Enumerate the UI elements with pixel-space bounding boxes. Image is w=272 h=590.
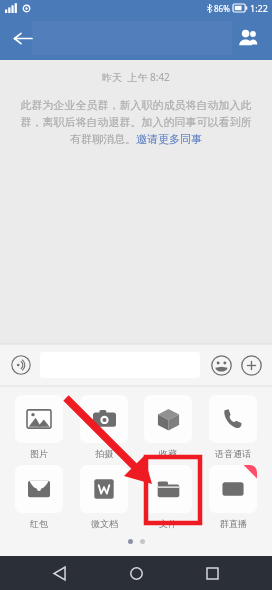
button[interactable]: 拍摄 xyxy=(75,395,133,459)
button[interactable]: 红包 xyxy=(10,465,68,529)
staticText: 此群为企业全员群，新入职的成员将自动加入此群，离职后将自动退群。加入的同事可以看… xyxy=(18,98,254,146)
staticText: 红包 xyxy=(30,518,48,529)
staticText: 1:22 xyxy=(250,2,268,14)
staticText: 收藏 xyxy=(159,448,177,459)
button[interactable]: Home xyxy=(120,557,152,589)
button[interactable]: Recent apps xyxy=(196,557,228,589)
staticText: 群直播 xyxy=(220,518,247,529)
button[interactable]: Back xyxy=(4,20,40,56)
button[interactable]: 图片 xyxy=(10,395,68,459)
button[interactable]: Back xyxy=(44,557,76,589)
button[interactable]: 群直播 xyxy=(204,465,262,529)
staticText: 微文档 xyxy=(91,518,118,529)
button[interactable]: 文件 xyxy=(139,465,197,529)
button[interactable]: Group members xyxy=(230,20,266,56)
button[interactable]: More xyxy=(238,352,264,378)
button[interactable]: 语音通话 xyxy=(204,395,262,459)
staticText: 语音通话 xyxy=(215,448,251,459)
button[interactable]: 收藏 xyxy=(139,395,197,459)
staticText: 昨天 上午 8:42 xyxy=(102,70,170,84)
staticText: 拍摄 xyxy=(95,448,113,459)
staticText: 图片 xyxy=(30,448,48,459)
button[interactable]: Voice message xyxy=(8,352,34,378)
button[interactable]: 微文档 xyxy=(75,465,133,529)
staticText: 86% xyxy=(214,3,230,14)
button[interactable]: Emoji xyxy=(208,352,234,378)
staticText: 文件 xyxy=(159,518,177,529)
